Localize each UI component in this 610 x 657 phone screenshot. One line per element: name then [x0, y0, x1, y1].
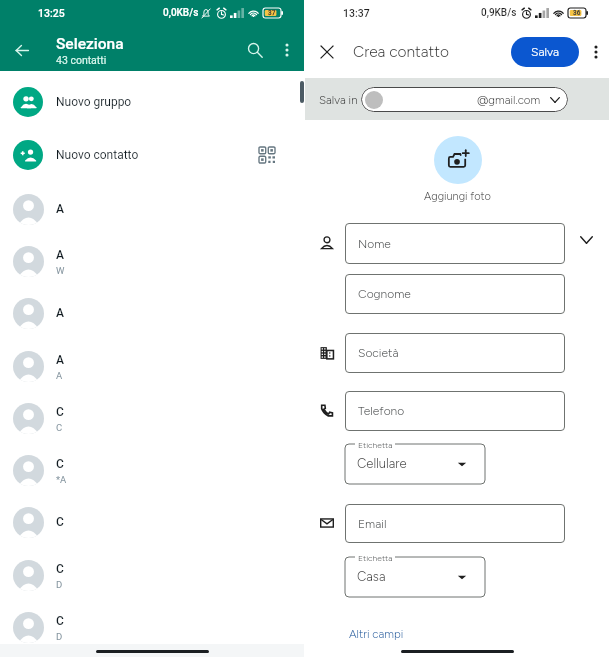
staticText: Cognome [358, 287, 411, 301]
staticText: D [56, 579, 63, 590]
button[interactable]: Salva [511, 37, 579, 67]
button[interactable]: More options [582, 38, 610, 66]
staticText: A [56, 248, 64, 262]
button[interactable]: Espandi [574, 228, 598, 252]
button[interactable]: A [0, 287, 304, 339]
staticText: Etichetta [358, 553, 393, 563]
staticText: W [56, 265, 65, 276]
staticText: Crea contatto [353, 42, 449, 61]
button[interactable]: Altri campi [349, 627, 404, 641]
staticText: C [56, 562, 64, 576]
staticText: Cellulare [357, 456, 407, 472]
button[interactable]: Cognome [345, 274, 565, 314]
staticText: 13:37 [343, 7, 370, 19]
button[interactable]: C [0, 601, 304, 653]
staticText: Email [358, 517, 387, 531]
staticText: 37 [268, 9, 276, 17]
button[interactable]: Close [311, 36, 343, 68]
button[interactable]: Nuovo contatto [0, 129, 304, 181]
staticText: Salva [531, 45, 559, 59]
button[interactable]: C [0, 549, 304, 601]
button[interactable]: Telefono [345, 391, 565, 431]
button[interactable]: Aggiungi foto [434, 136, 482, 184]
staticText: @gmail.com [477, 93, 541, 107]
staticText: D [56, 631, 63, 642]
staticText: Salva in [319, 93, 358, 107]
staticText: Aggiungi foto [424, 190, 491, 203]
staticText: A [56, 353, 64, 367]
staticText: Nuovo contatto [56, 148, 139, 162]
button[interactable]: Cellulare [345, 444, 485, 484]
staticText: A [56, 202, 64, 216]
button[interactable]: Back [2, 30, 42, 70]
button[interactable]: C [0, 444, 304, 496]
staticText: Nuovo gruppo [56, 95, 132, 109]
staticText: Nome [358, 237, 391, 251]
button[interactable]: Casa [345, 557, 485, 597]
staticText: C [56, 614, 64, 628]
staticText: 13:25 [38, 7, 65, 19]
staticText: A [56, 306, 64, 320]
staticText: A [56, 370, 63, 381]
button[interactable]: C [0, 392, 304, 444]
staticText: *A [56, 474, 67, 485]
button[interactable]: Search [237, 32, 273, 68]
button[interactable]: A [0, 183, 304, 235]
button[interactable]: Società [345, 333, 565, 373]
button[interactable]: Nuovo gruppo [0, 76, 304, 128]
button[interactable]: QR code [251, 139, 283, 171]
button[interactable]: Email [345, 504, 565, 543]
staticText: 0,9KB/s [481, 7, 517, 19]
button[interactable]: A [0, 340, 304, 392]
button[interactable]: @gmail.com [361, 87, 568, 112]
staticText: C [56, 422, 63, 433]
staticText: Etichetta [358, 440, 393, 450]
staticText: Società [358, 346, 399, 360]
staticText: Casa [357, 569, 386, 585]
staticText: 43 contatti [56, 54, 107, 66]
staticText: Telefono [358, 404, 405, 418]
button[interactable]: C [0, 496, 304, 548]
staticText: Seleziona [56, 35, 124, 53]
staticText: C [56, 457, 64, 471]
button[interactable]: A [0, 235, 304, 287]
staticText: 0,0KB/s [163, 7, 199, 19]
staticText: C [56, 515, 64, 529]
button[interactable]: More options [271, 34, 303, 66]
button[interactable]: Nome [345, 223, 565, 264]
staticText: 36 [573, 9, 581, 17]
staticText: C [56, 405, 64, 419]
